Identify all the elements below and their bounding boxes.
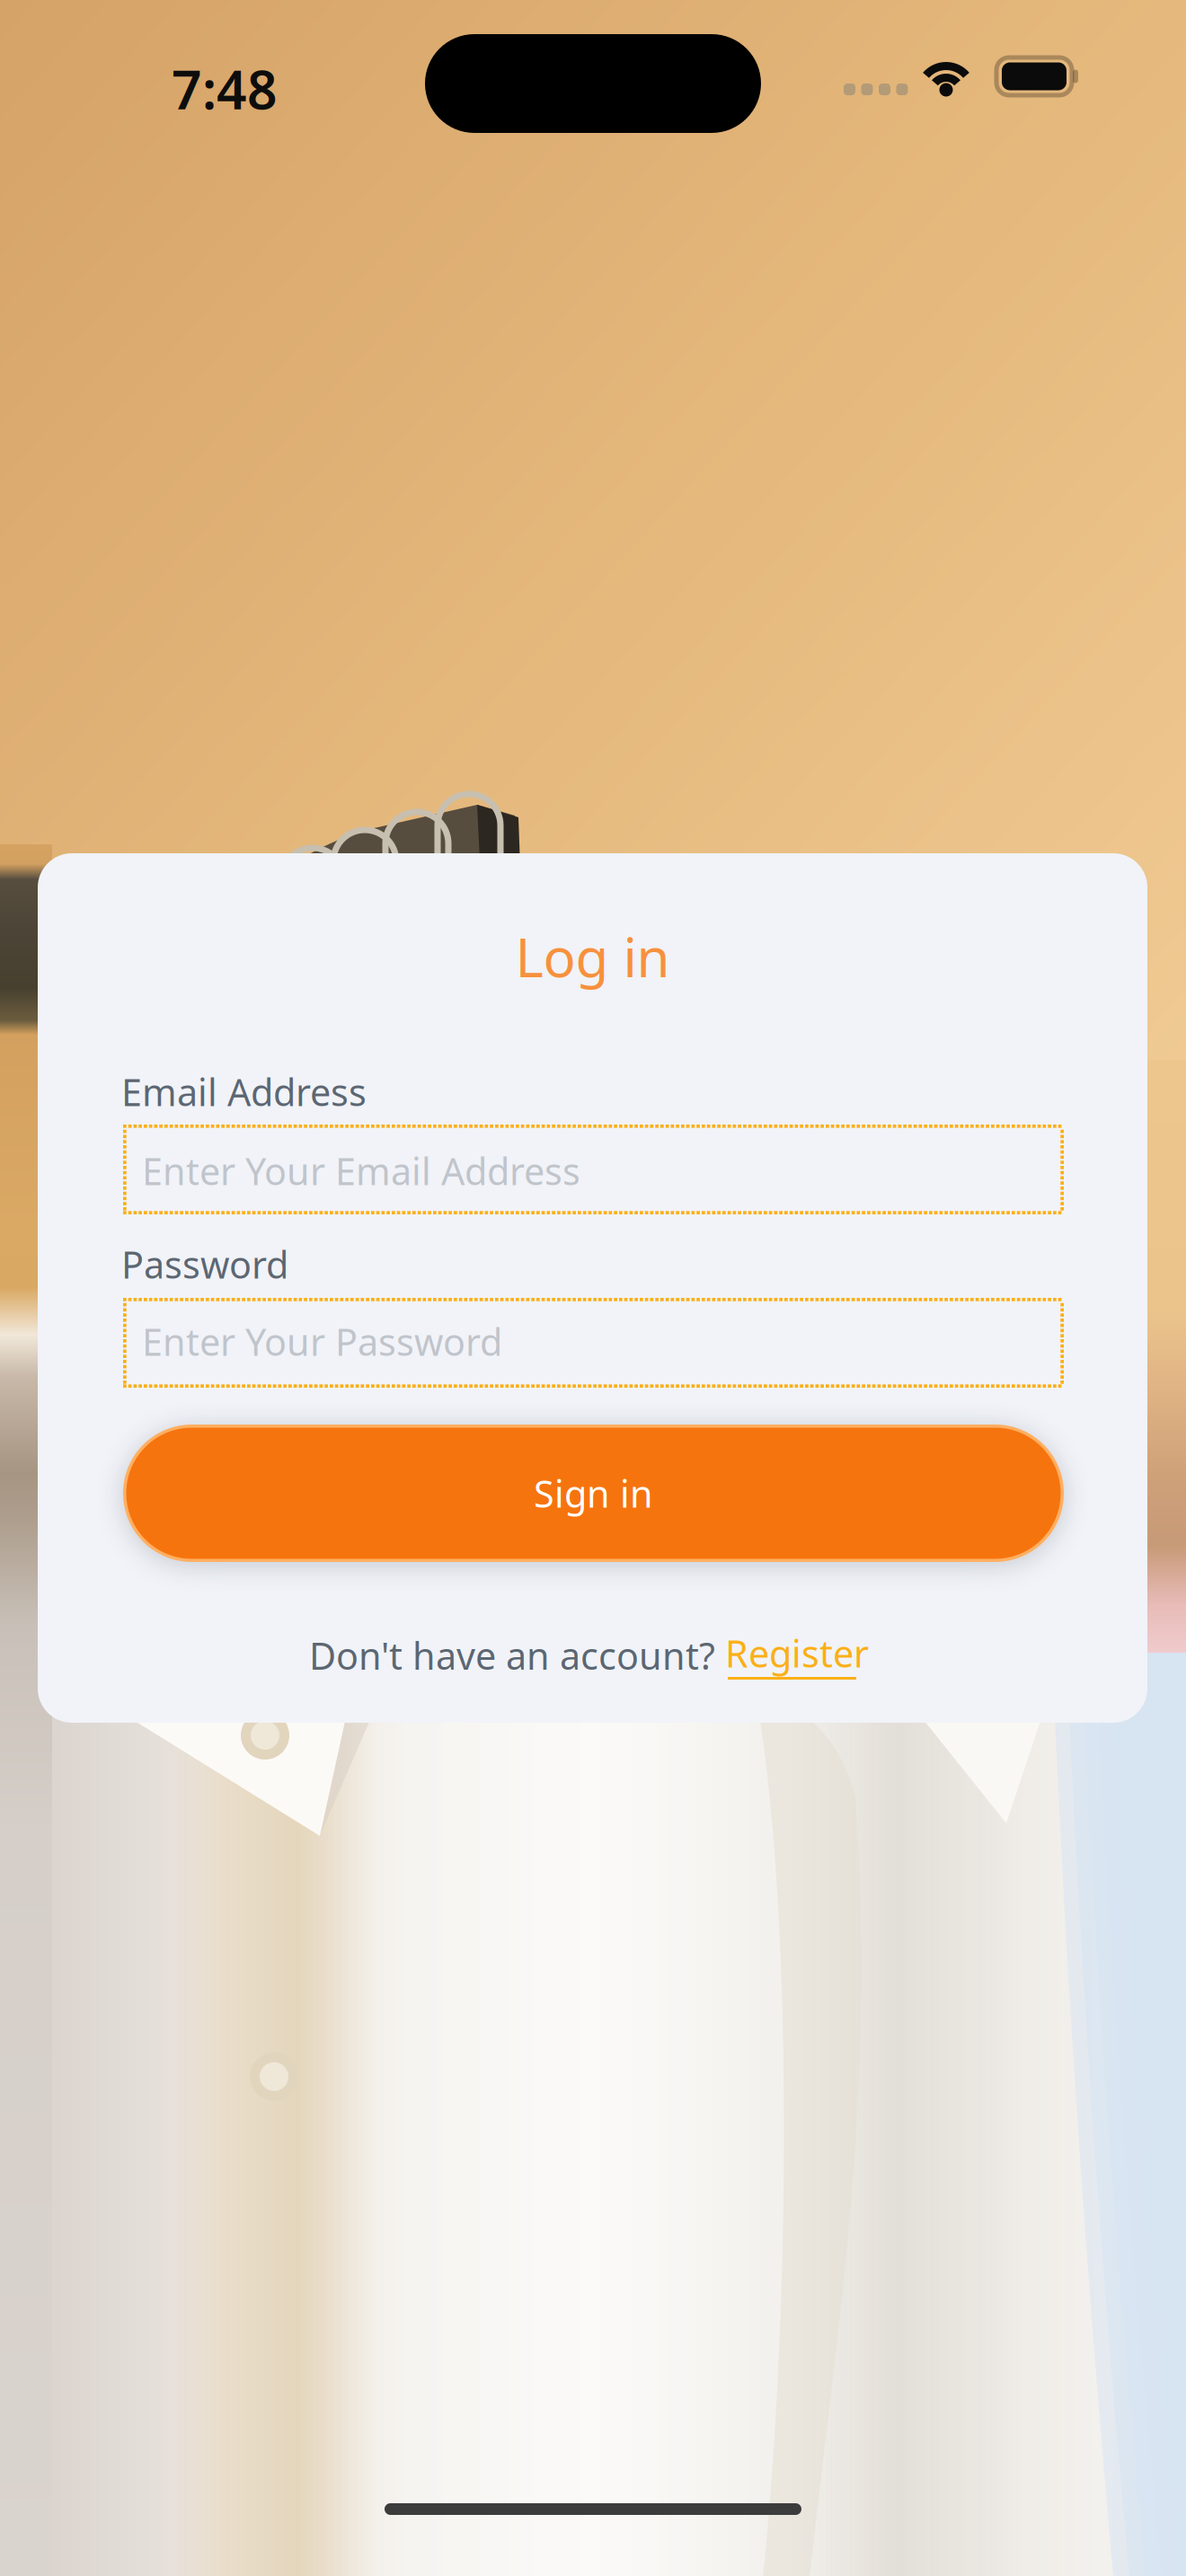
staticText: Password (121, 1239, 288, 1289)
staticText: Sign in (534, 1469, 653, 1518)
staticText: Don't have an account? (309, 1631, 725, 1680)
staticText: Email Address (121, 1067, 367, 1116)
button[interactable]: Don't have an account? (309, 1628, 905, 1682)
staticText: 7:48 (172, 54, 278, 124)
staticText: Enter Your Password (142, 1317, 502, 1366)
button[interactable]: Sign in (123, 1425, 1064, 1562)
staticText: Enter Your Email Address (142, 1146, 580, 1195)
staticText: Register (725, 1628, 869, 1678)
staticText: Log in (515, 921, 670, 992)
